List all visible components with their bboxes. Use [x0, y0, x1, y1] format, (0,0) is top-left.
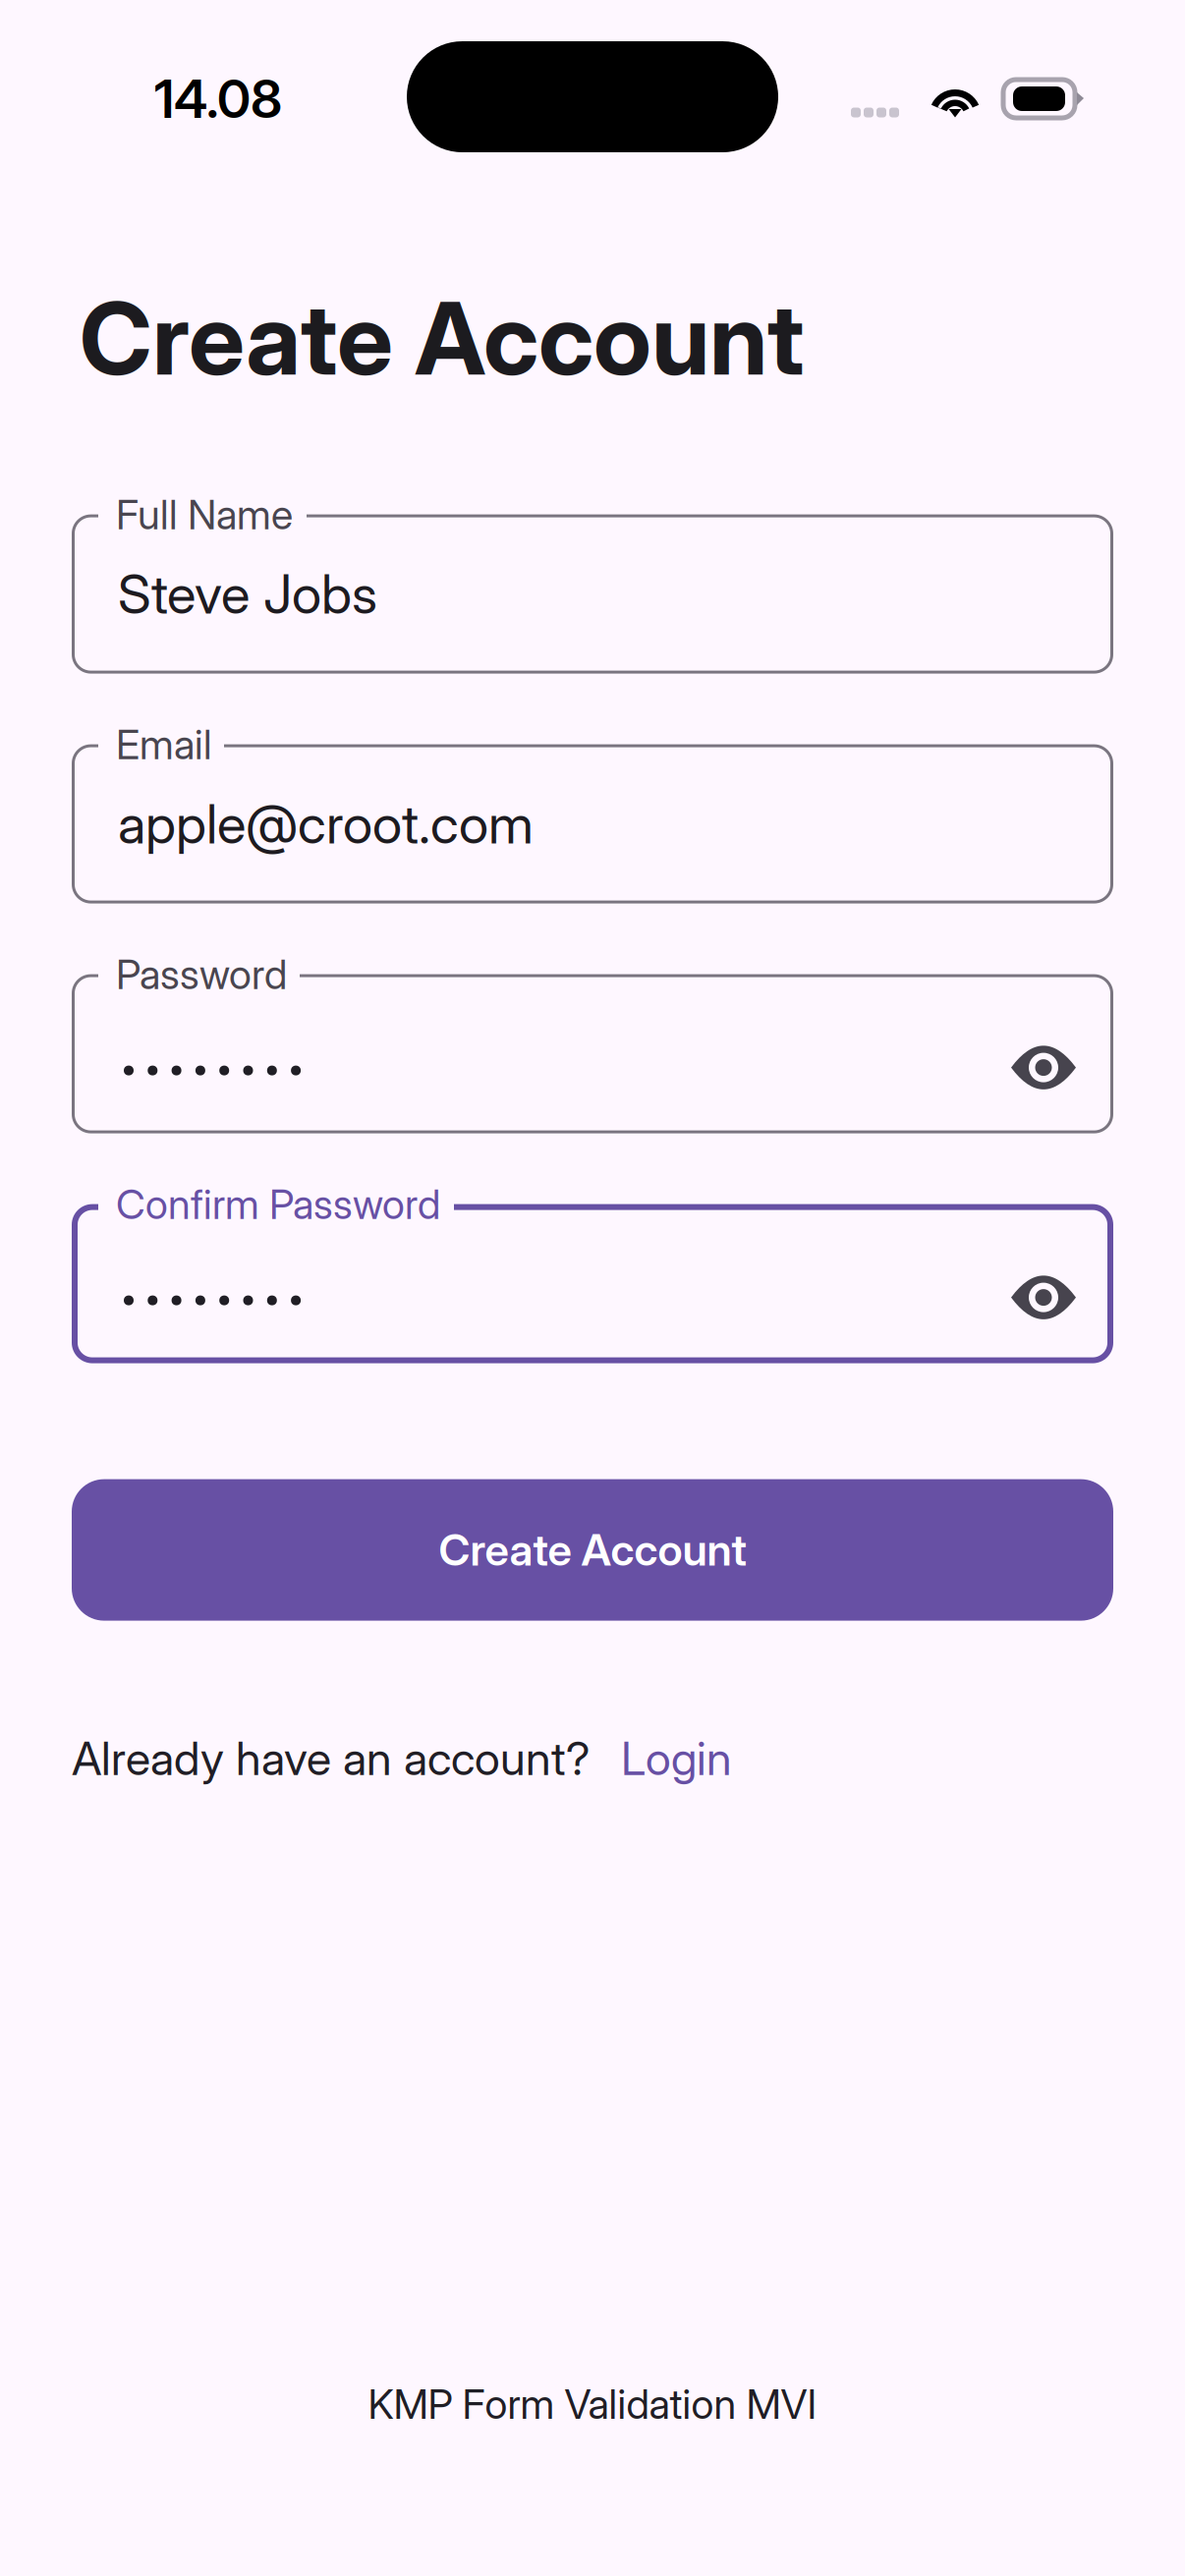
staticText: Confirm Password	[116, 1180, 440, 1229]
staticText: KMP Form Validation MVI	[368, 2380, 817, 2429]
button[interactable]: Show confirm password	[1003, 1267, 1084, 1327]
button[interactable]: Create Account	[72, 1479, 1113, 1621]
staticText: Login	[621, 1731, 732, 1786]
staticText: Password	[116, 950, 287, 999]
staticText: Steve Jobs	[118, 561, 377, 626]
button[interactable]: Password	[72, 974, 1113, 1133]
button[interactable]: Email	[72, 744, 1113, 903]
staticText: Create Account	[80, 278, 804, 398]
button[interactable]: Login	[590, 1723, 732, 1794]
staticText: Email	[116, 720, 212, 769]
staticText: Full Name	[116, 490, 293, 539]
staticText: 14.08	[154, 67, 282, 130]
button[interactable]: Confirm Password	[72, 1204, 1113, 1363]
button[interactable]: Full Name	[72, 514, 1113, 674]
staticText: Create Account	[439, 1524, 746, 1576]
staticText: Already have an account?	[72, 1731, 590, 1786]
button[interactable]: Show password	[1003, 1038, 1084, 1098]
staticText: apple@croot.com	[118, 791, 534, 856]
